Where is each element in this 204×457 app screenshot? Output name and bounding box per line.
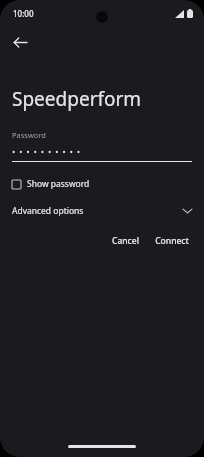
staticText: 10:00	[13, 8, 34, 19]
staticText: Connect	[155, 235, 189, 247]
button[interactable]: Connect	[148, 230, 196, 252]
staticText: Show password	[27, 178, 90, 190]
button[interactable]: Cancel	[105, 230, 146, 252]
staticText: Advanced options	[12, 205, 183, 217]
button[interactable]: Back	[4, 26, 36, 58]
staticText: Cancel	[112, 235, 139, 247]
button[interactable]: Advanced options	[12, 201, 192, 221]
other: Expand advanced options	[183, 208, 192, 214]
button[interactable]: Password	[12, 130, 192, 162]
staticText: Password	[12, 130, 46, 140]
staticText: Speedperform	[12, 86, 142, 112]
button[interactable]: Show password	[12, 178, 192, 190]
